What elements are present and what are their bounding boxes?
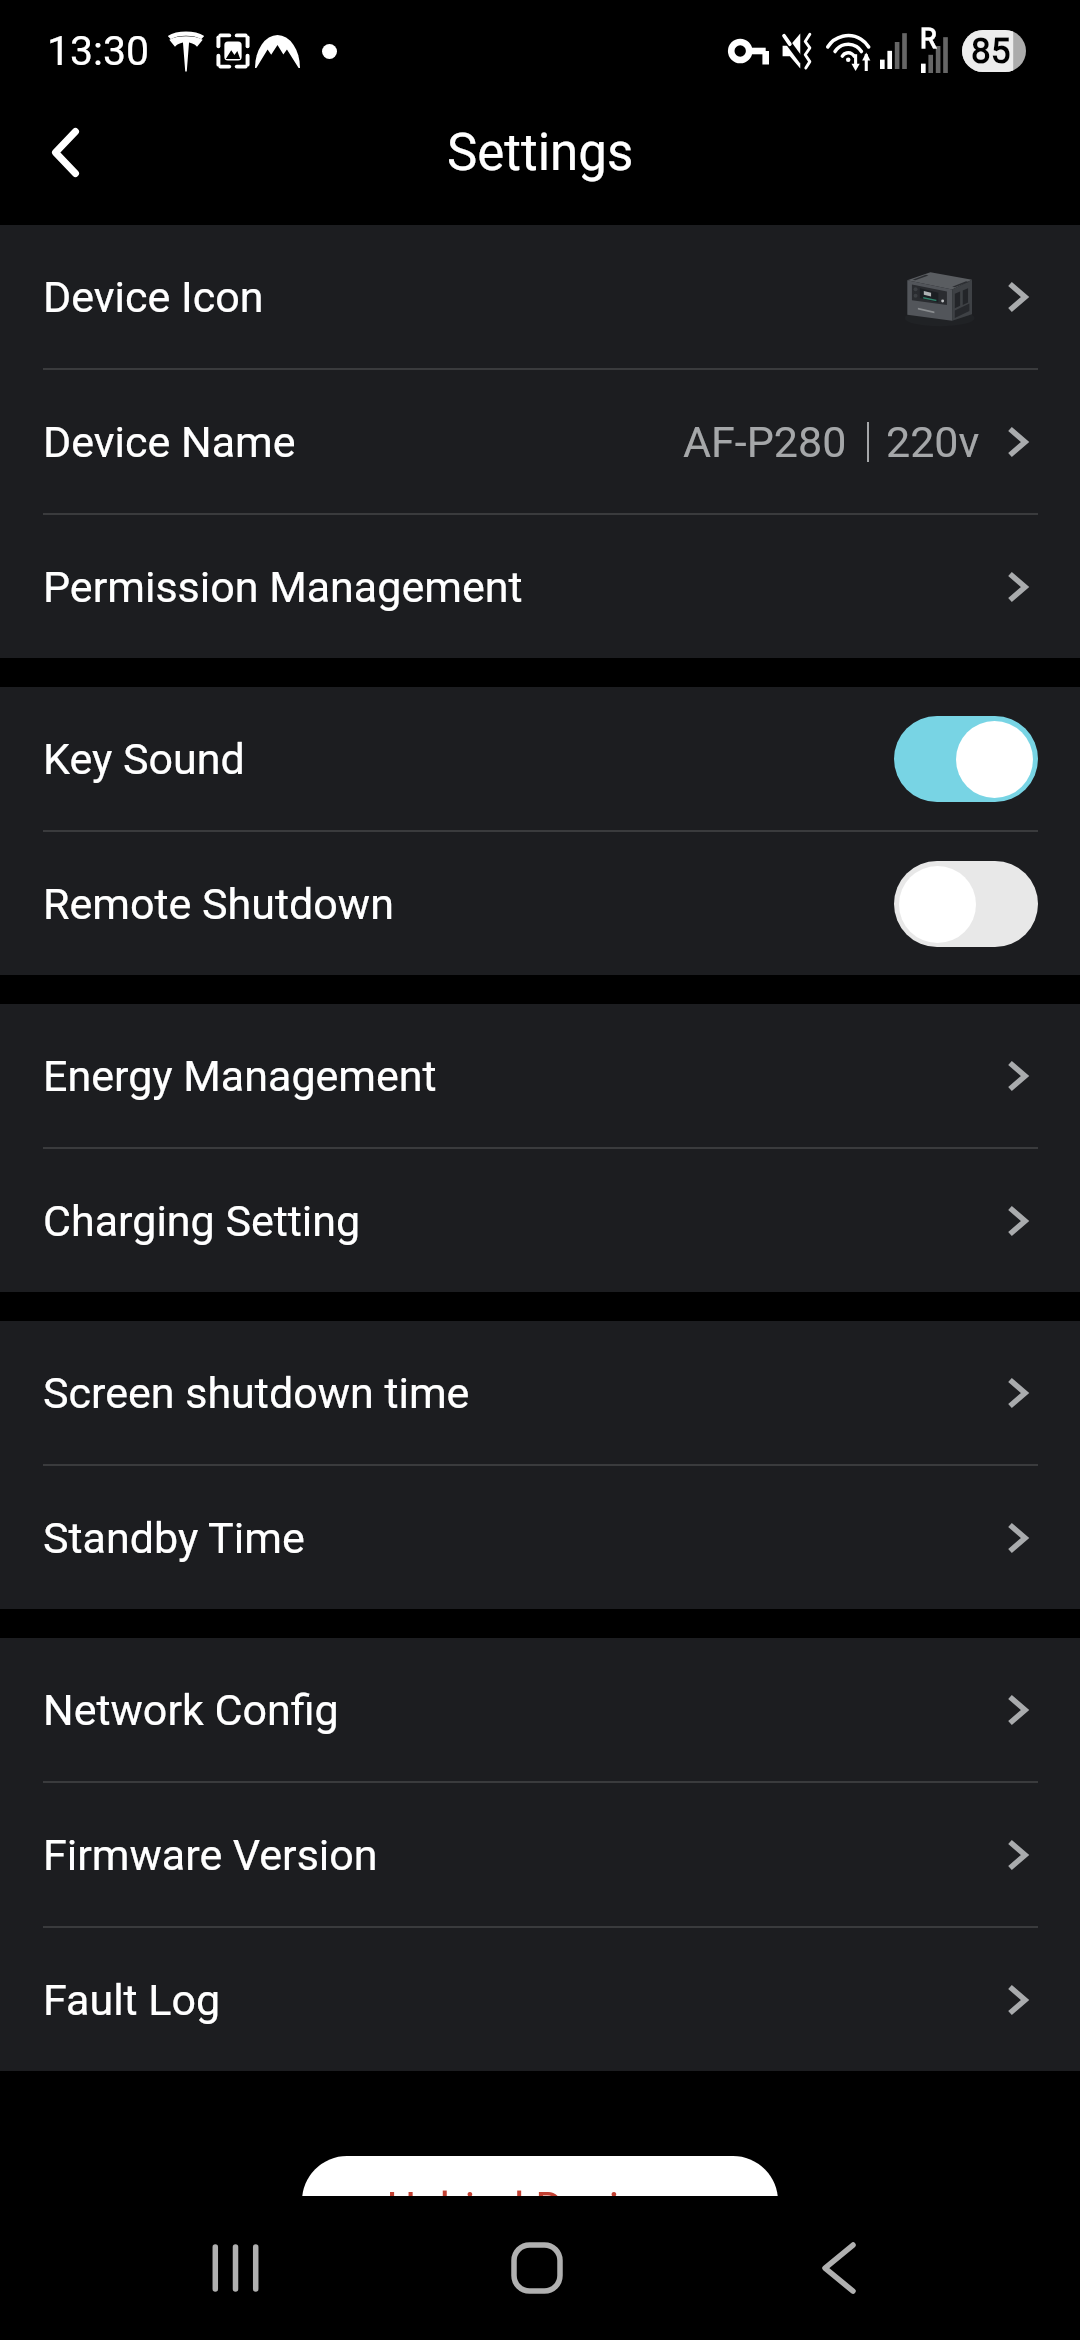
staticText: 13:30 [47,27,150,75]
button[interactable]: Network Config [0,1638,1080,1781]
button[interactable]: Permission Management [0,515,1080,658]
staticText: Settings [447,123,634,183]
staticText: Device Name [43,417,296,467]
button[interactable]: Key Sound [0,687,1080,830]
staticText: Fault Log [43,1975,221,2025]
staticText: Unbind Device [387,2183,666,2235]
staticText: Standby Time [43,1513,305,1563]
button[interactable]: Energy Management [0,1004,1080,1147]
button[interactable]: Firmware Version [0,1783,1080,1926]
button[interactable]: Remote Shutdown [0,832,1080,975]
staticText: Network Config [43,1685,339,1735]
staticText: R [920,23,937,55]
staticText: 85 [971,31,1011,72]
button[interactable]: Screen shutdown time [0,1321,1080,1464]
staticText: Permission Management [43,562,523,612]
button[interactable]: Fault Log [0,1928,1080,2071]
staticText: Device Icon [43,272,264,322]
button[interactable]: On [894,716,1038,802]
staticText: Remote Shutdown [43,879,394,929]
staticText: Screen shutdown time [43,1368,470,1418]
button[interactable]: Device Icon [0,225,1080,368]
button[interactable]: Charging Setting [0,1149,1080,1292]
button[interactable]: Home [482,2213,592,2323]
staticText: 220v [886,417,980,467]
staticText: Energy Management [43,1051,437,1101]
button[interactable]: Back [10,97,120,207]
button[interactable]: Recent apps [180,2213,290,2323]
button[interactable]: Device Name [0,370,1080,513]
button[interactable]: Back [784,2213,894,2323]
staticText: Charging Setting [43,1196,361,1246]
button[interactable]: Off [894,861,1038,947]
staticText: AF-P280 [683,417,847,467]
button[interactable]: Standby Time [0,1466,1080,1609]
staticText: Firmware Version [43,1830,378,1880]
button[interactable]: Unbind Device [302,2156,778,2266]
staticText: Key Sound [43,734,245,784]
